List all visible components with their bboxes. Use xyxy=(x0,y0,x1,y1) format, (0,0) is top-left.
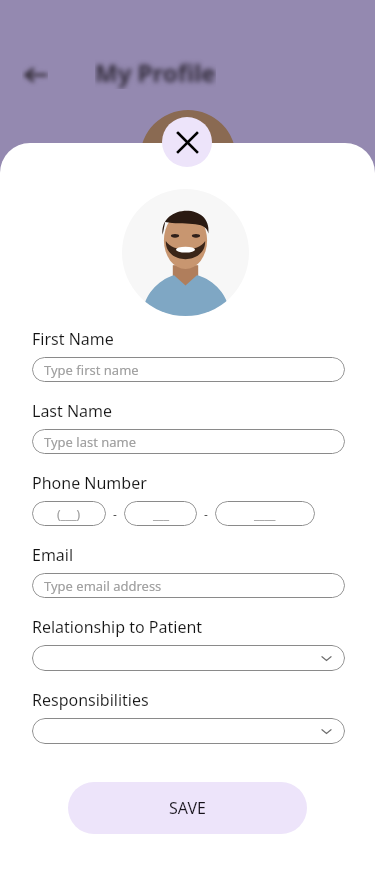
button[interactable] xyxy=(32,645,345,671)
staticText: ___ xyxy=(153,506,169,522)
staticText: Relationship to Patient xyxy=(32,616,203,638)
button[interactable]: ____ xyxy=(215,501,315,526)
staticText: Last Name xyxy=(32,400,113,422)
staticText: Type first name xyxy=(44,361,139,379)
staticText: Responsibilities xyxy=(32,689,149,711)
button[interactable]: SAVE xyxy=(68,782,307,834)
staticText: Type email address xyxy=(44,577,162,595)
staticText: Type last name xyxy=(44,433,137,451)
button[interactable]: Type email address xyxy=(32,573,345,598)
button[interactable]: (___) xyxy=(32,501,106,526)
staticText: ____ xyxy=(254,506,276,522)
staticText: (___) xyxy=(57,506,81,522)
button[interactable]: ___ xyxy=(124,501,197,526)
staticText: First Name xyxy=(32,328,114,350)
staticText: Phone Number xyxy=(32,472,147,494)
staticText: - xyxy=(204,506,208,522)
button[interactable]: Close xyxy=(162,117,212,167)
staticText: Email xyxy=(32,544,74,566)
staticText: - xyxy=(113,506,117,522)
staticText: My Profile xyxy=(95,56,216,89)
button[interactable]: Type first name xyxy=(32,357,345,382)
staticText: SAVE xyxy=(169,797,206,819)
button[interactable]: Type last name xyxy=(32,429,345,454)
button[interactable] xyxy=(32,718,345,744)
